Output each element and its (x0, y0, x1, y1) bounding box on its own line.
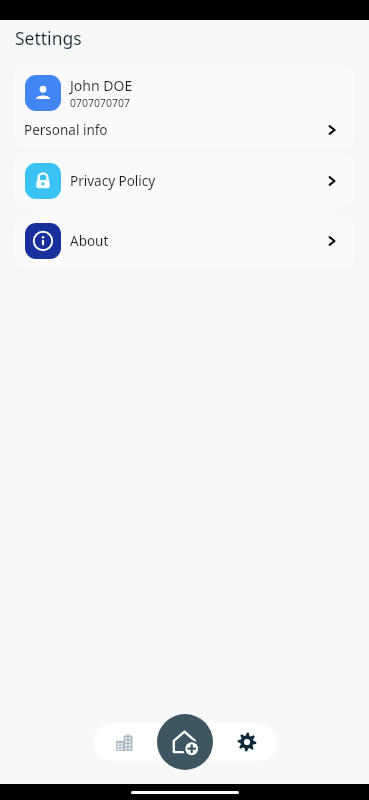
staticText: Settings (15, 26, 82, 50)
button[interactable]: Privacy Policy (14, 154, 355, 208)
staticText: Personal info (24, 121, 108, 139)
staticText: Privacy Policy (70, 172, 156, 190)
button[interactable]: Add home (157, 714, 213, 770)
button[interactable]: About (14, 214, 355, 268)
button[interactable]: Settings (216, 723, 277, 761)
staticText: 0707070707 (70, 96, 131, 110)
button[interactable]: Buildings (93, 723, 155, 761)
staticText: John DOE (70, 76, 133, 95)
button[interactable]: John DOE (14, 64, 355, 148)
staticText: About (70, 232, 109, 250)
